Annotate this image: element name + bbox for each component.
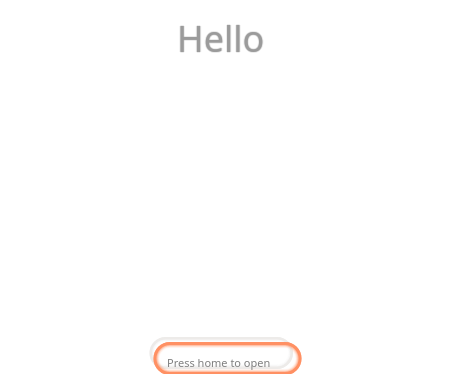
staticText: Hello bbox=[177, 14, 265, 62]
staticText: Press home to open bbox=[167, 355, 271, 370]
staticText: Hello bbox=[177, 13, 265, 61]
staticText: Hello bbox=[177, 15, 265, 63]
button[interactable]: Press home to open bbox=[153, 342, 301, 374]
staticText: Hello bbox=[178, 14, 266, 62]
staticText: Hello bbox=[176, 14, 264, 62]
